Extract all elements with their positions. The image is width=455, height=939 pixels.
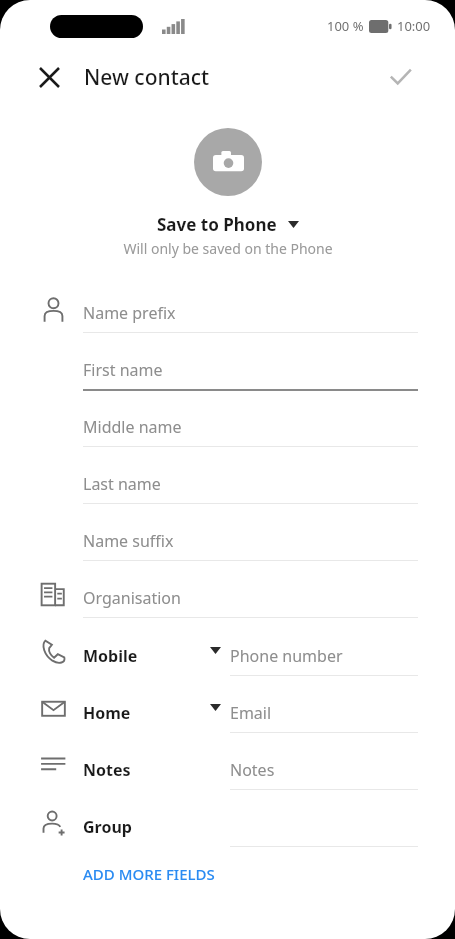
button[interactable]: Middle name [83,404,418,450]
staticText: Email [230,702,272,724]
staticText: First name [83,359,163,381]
button[interactable]: Add photo [194,128,262,196]
staticText: Will only be saved on the Phone [123,239,333,258]
staticText: Mobile [83,645,138,667]
button[interactable]: Mobile [83,632,223,679]
button[interactable]: Name prefix [83,290,418,336]
button[interactable]: Save [377,54,423,100]
staticText: Phone number [230,645,343,667]
button[interactable]: Email [230,689,418,736]
button[interactable]: Organisation [83,575,418,621]
staticText: Home [83,702,131,724]
button[interactable]: Last name [83,461,418,507]
staticText: 10:00 [397,17,431,35]
staticText: Name suffix [83,530,174,552]
staticText: Name prefix [83,302,176,324]
staticText: New contact [84,63,210,92]
staticText: ADD MORE FIELDS [83,864,215,884]
staticText: Last name [83,473,161,495]
staticText: 100 % [327,17,364,35]
staticText: Organisation [83,587,181,609]
staticText: Notes [230,759,275,781]
button[interactable]: Notes [230,746,418,793]
button[interactable]: Close [26,54,72,100]
button[interactable]: Name suffix [83,518,418,564]
button[interactable]: Home [83,689,223,736]
staticText: Group [83,816,132,838]
staticText: Middle name [83,416,182,438]
button[interactable]: Phone number [230,632,418,679]
staticText: Notes [83,759,131,781]
button[interactable]: First name [83,347,418,393]
button[interactable]: ADD MORE FIELDS [72,857,262,891]
staticText: Save to Phone [157,213,277,236]
button[interactable] [230,803,418,850]
button[interactable]: Group [83,803,223,850]
button[interactable]: Notes [83,746,223,793]
button[interactable]: Save to Phone [143,210,313,238]
